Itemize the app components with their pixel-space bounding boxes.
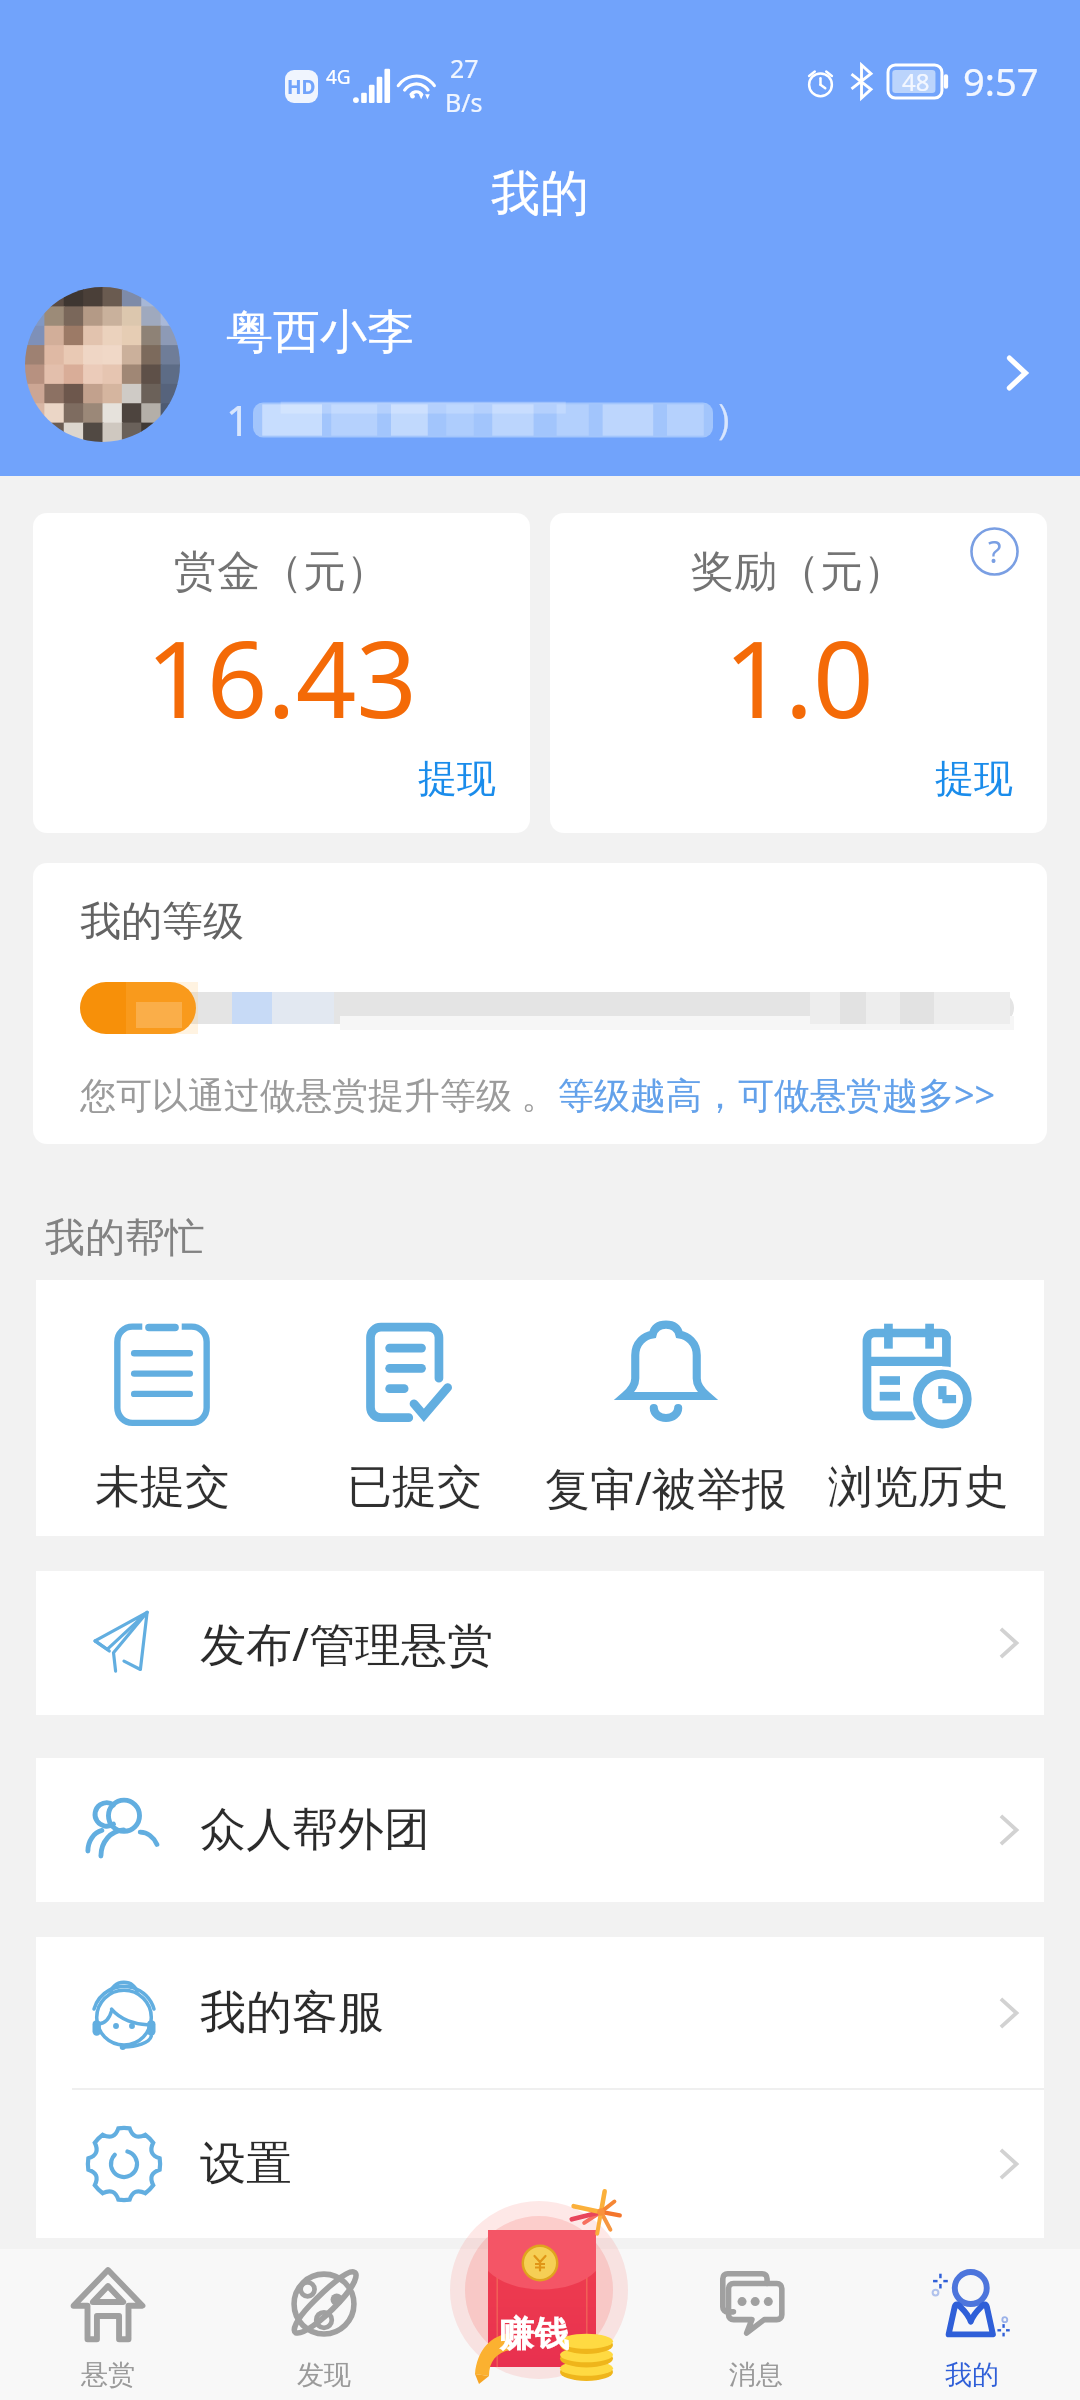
staticText: B/s <box>445 85 483 119</box>
staticText: 设置 <box>200 2135 292 2193</box>
staticText: 等级越高，可做悬赏越多>> <box>558 1070 996 1119</box>
button[interactable]: 赏金（元） <box>33 513 530 833</box>
staticText: HD <box>287 74 316 100</box>
staticText: 已提交 <box>347 1459 482 1516</box>
staticText: 复审/被举报 <box>545 1457 787 1518</box>
button[interactable]: 发布/管理悬赏 <box>36 1571 1044 1715</box>
button[interactable]: 赚钱 <box>439 2190 639 2341</box>
staticText: 我的帮忙 <box>45 1212 205 1262</box>
button[interactable]: 粤西小李 <box>0 287 1080 442</box>
button[interactable]: 消息 <box>648 2249 864 2400</box>
button[interactable]: 浏览历史 <box>792 1280 1044 1536</box>
button[interactable]: 帮助 <box>971 528 1018 575</box>
staticText: 48 <box>902 65 930 98</box>
staticText: 9:57 <box>963 55 1039 107</box>
staticText: ） <box>713 393 755 446</box>
staticText: 我的 <box>945 2358 999 2392</box>
staticText: 4G <box>326 64 351 90</box>
staticText: 发布/管理悬赏 <box>200 1612 494 1675</box>
staticText: 赏金（元） <box>174 545 389 599</box>
button[interactable]: 设置 <box>36 2090 1044 2238</box>
staticText: 奖励（元） <box>691 545 906 599</box>
button[interactable]: 悬赏 <box>0 2249 216 2400</box>
staticText: ? <box>988 530 1002 572</box>
button[interactable]: 个人资料 <box>979 335 1055 411</box>
button[interactable]: 众人帮外团 <box>36 1758 1044 1902</box>
staticText: 您可以通过做悬赏提升等级 。 <box>80 1070 558 1119</box>
staticText: 赚钱 <box>499 2312 569 2356</box>
button[interactable]: 发现 <box>216 2249 432 2400</box>
button[interactable]: 奖励（元） <box>550 513 1047 833</box>
staticText: 粤西小李 <box>226 303 414 362</box>
staticText: 未提交 <box>95 1459 230 1516</box>
staticText: 1.0 <box>724 605 874 749</box>
staticText: 我的 <box>491 163 589 225</box>
button[interactable]: 未提交 <box>36 1280 288 1536</box>
button[interactable]: 复审/被举报 <box>540 1280 792 1536</box>
staticText: 悬赏 <box>81 2358 135 2392</box>
staticText: 27 <box>450 51 479 85</box>
staticText: 浏览历史 <box>828 1459 1008 1516</box>
button[interactable]: 我的 <box>864 2249 1080 2400</box>
button[interactable]: 我的等级 <box>33 863 1047 1144</box>
button[interactable]: 我的客服 <box>36 1937 1044 2088</box>
button[interactable]: 提现 <box>935 754 1013 803</box>
button[interactable]: 赚钱 <box>432 2249 648 2400</box>
button[interactable]: 提现 <box>418 754 496 803</box>
staticText: 1 <box>226 391 251 448</box>
staticText: 消息 <box>729 2358 783 2392</box>
button[interactable]: 已提交 <box>288 1280 540 1536</box>
staticText: 众人帮外团 <box>200 1801 430 1859</box>
staticText: 我的等级 <box>80 896 244 948</box>
staticText: 16.43 <box>146 605 417 749</box>
staticText: 发现 <box>297 2358 351 2392</box>
staticText: 我的客服 <box>200 1984 384 2042</box>
